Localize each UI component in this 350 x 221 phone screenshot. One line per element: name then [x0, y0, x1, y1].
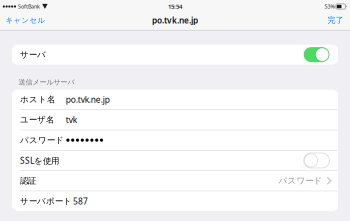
staticText: tvk [66, 114, 77, 125]
staticText: SSLを使用 [20, 155, 59, 166]
staticText: ユーザ名 [20, 114, 54, 125]
button[interactable]: サーバ [12, 45, 338, 64]
button[interactable]: キャンセル [0, 13, 51, 27]
staticText: 送信メールサーバ [18, 78, 74, 86]
staticText: po.tvk.ne.jp [66, 94, 110, 105]
staticText: パスワード [278, 175, 322, 186]
staticText: キャンセル [5, 16, 45, 25]
staticText: 完了 [327, 15, 343, 25]
staticText: ホスト名 [20, 94, 55, 105]
staticText: パスワード [20, 135, 64, 145]
staticText: 15:54 [168, 2, 182, 11]
staticText: po.tvk.ne.jp [152, 15, 198, 26]
staticText: 53% [324, 3, 334, 10]
button[interactable]: 認証 [12, 171, 338, 191]
staticText: SoftBank [18, 3, 40, 10]
button[interactable]: SSLを使用 [12, 151, 338, 170]
button[interactable]: 完了 [321, 13, 350, 27]
staticText: サーバポート [20, 196, 72, 206]
staticText: 認証 [20, 175, 36, 186]
staticText: 587 [73, 195, 88, 207]
staticText: サーバ [20, 49, 46, 60]
